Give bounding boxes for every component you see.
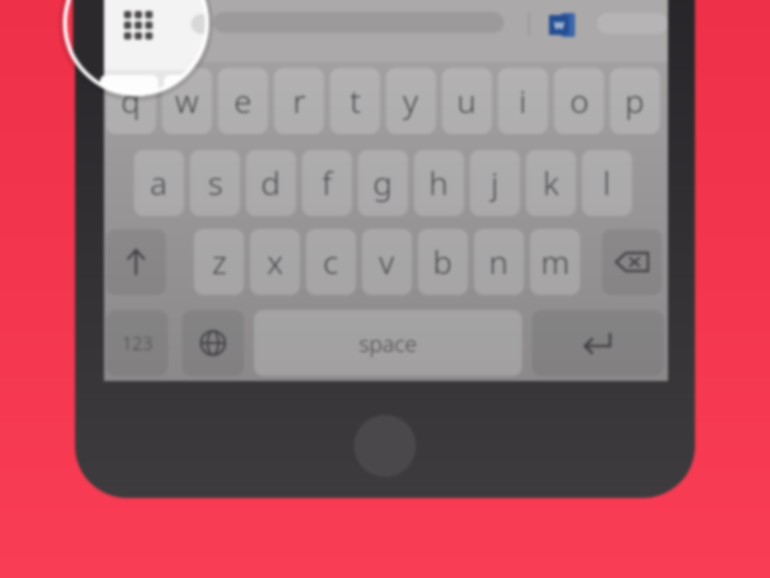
button[interactable]: j xyxy=(470,150,520,216)
staticText: h xyxy=(429,161,449,205)
staticText: m xyxy=(541,240,570,284)
staticText: s xyxy=(208,161,223,205)
button[interactable]: c xyxy=(306,229,356,295)
button[interactable] xyxy=(532,310,664,376)
staticText: a xyxy=(150,161,168,205)
button[interactable] xyxy=(63,0,209,96)
button[interactable]: h xyxy=(414,150,464,216)
staticText: w xyxy=(554,16,565,32)
button[interactable]: 123 xyxy=(106,310,168,376)
staticText: y xyxy=(403,79,419,123)
button[interactable] xyxy=(597,13,668,34)
staticText: r xyxy=(293,79,306,123)
button[interactable]: e xyxy=(218,68,268,134)
button[interactable]: v xyxy=(362,229,412,295)
staticText: u xyxy=(457,79,477,123)
staticText: n xyxy=(489,240,509,284)
button[interactable]: p xyxy=(610,68,660,134)
button[interactable] xyxy=(602,229,662,295)
button[interactable]: g xyxy=(358,150,408,216)
staticText: z xyxy=(212,240,227,284)
staticText: b xyxy=(433,240,453,284)
button[interactable]: n xyxy=(474,229,524,295)
button[interactable] xyxy=(182,310,244,376)
staticText: l xyxy=(603,161,611,205)
button[interactable]: u xyxy=(442,68,492,134)
button[interactable] xyxy=(106,229,166,295)
staticText: i xyxy=(519,79,527,123)
button[interactable]: l xyxy=(582,150,632,216)
button[interactable]: x xyxy=(250,229,300,295)
button[interactable]: space xyxy=(254,310,522,376)
button[interactable]: o xyxy=(554,68,604,134)
staticText: p xyxy=(625,79,645,123)
button[interactable]: q xyxy=(106,68,156,134)
staticText: w xyxy=(175,79,199,123)
staticText: k xyxy=(543,161,559,205)
button[interactable]: s xyxy=(190,150,240,216)
button[interactable]: w xyxy=(162,68,212,134)
staticText: q xyxy=(121,79,141,123)
staticText: t xyxy=(350,79,361,123)
button[interactable]: f xyxy=(302,150,352,216)
staticText: g xyxy=(373,161,393,205)
staticText: e xyxy=(234,79,252,123)
staticText: j xyxy=(491,161,499,205)
button[interactable]: a xyxy=(134,150,184,216)
button[interactable]: m xyxy=(530,229,580,295)
staticText: d xyxy=(261,161,281,205)
button[interactable]: t xyxy=(330,68,380,134)
staticText: f xyxy=(322,161,332,205)
staticText: o xyxy=(570,79,589,123)
staticText: c xyxy=(323,240,339,284)
staticText: v xyxy=(379,240,395,284)
button[interactable]: w xyxy=(549,12,575,38)
button[interactable]: z xyxy=(194,229,244,295)
button[interactable]: d xyxy=(246,150,296,216)
button[interactable]: r xyxy=(274,68,324,134)
staticText: space xyxy=(359,328,417,358)
button[interactable] xyxy=(354,415,416,477)
button[interactable]: i xyxy=(498,68,548,134)
button[interactable]: k xyxy=(526,150,576,216)
staticText: x xyxy=(267,240,284,284)
staticText: 123 xyxy=(122,331,153,356)
button[interactable]: y xyxy=(386,68,436,134)
button[interactable]: b xyxy=(418,229,468,295)
